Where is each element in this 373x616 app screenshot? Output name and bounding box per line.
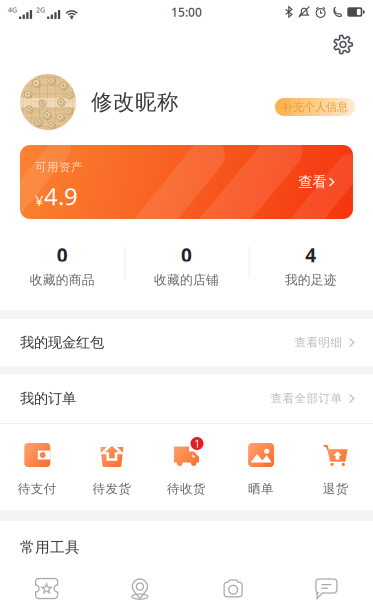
button[interactable]: 4 bbox=[249, 223, 373, 310]
staticText: 待收货 bbox=[167, 481, 206, 497]
staticText: 我的足迹 bbox=[285, 272, 337, 288]
staticText: 收藏的店铺 bbox=[154, 272, 219, 288]
staticText: 15:00 bbox=[171, 4, 202, 20]
staticText: 4.9 bbox=[44, 179, 78, 212]
button[interactable]: 退货 bbox=[298, 424, 373, 510]
staticText: 收藏的商品 bbox=[30, 272, 95, 288]
button[interactable]: 可用资产 bbox=[20, 145, 353, 219]
button[interactable]: 待支付 bbox=[0, 424, 75, 510]
staticText: 0 bbox=[181, 242, 192, 268]
button[interactable]: 修改昵称 bbox=[76, 88, 179, 116]
button[interactable]: 我的订单 bbox=[0, 374, 373, 423]
staticText: 退货 bbox=[323, 481, 349, 497]
button[interactable]: 我的现金红包 bbox=[0, 319, 373, 366]
staticText: 补充个人信息 bbox=[282, 100, 348, 114]
button[interactable]: 我的评价 bbox=[280, 573, 373, 603]
staticText: 1 bbox=[194, 436, 200, 451]
staticText: 4 bbox=[305, 242, 316, 268]
staticText: 待支付 bbox=[18, 481, 57, 497]
button[interactable]: 晒单 bbox=[224, 424, 298, 510]
staticText: 待发货 bbox=[92, 481, 131, 497]
staticText: 我的现金红包 bbox=[20, 334, 104, 351]
button[interactable]: 头像 bbox=[20, 74, 76, 130]
button[interactable]: 0 bbox=[124, 223, 249, 310]
staticText: 查看明细 bbox=[294, 335, 342, 350]
button[interactable]: 补充个人信息 bbox=[275, 93, 355, 111]
staticText: 修改昵称 bbox=[91, 88, 179, 116]
staticText: 4G bbox=[8, 5, 17, 14]
button[interactable]: 设置 bbox=[327, 28, 359, 60]
staticText: 常用工具 bbox=[20, 538, 80, 556]
button[interactable]: 待发货 bbox=[75, 424, 149, 510]
staticText: 查看全部订单 bbox=[270, 391, 342, 406]
staticText: ¥ bbox=[35, 190, 44, 210]
button[interactable]: 1 bbox=[149, 424, 224, 510]
staticText: 0 bbox=[57, 242, 68, 268]
button[interactable]: 我的地址 bbox=[93, 573, 186, 603]
staticText: 可用资产 bbox=[35, 160, 83, 174]
button[interactable]: 0 bbox=[0, 223, 124, 310]
staticText: 查看 bbox=[298, 173, 326, 191]
staticText: 我的订单 bbox=[20, 390, 76, 407]
button[interactable]: 优惠券 bbox=[0, 573, 93, 603]
staticText: 2G bbox=[36, 5, 45, 14]
button[interactable]: 扫一扫 bbox=[186, 573, 280, 603]
staticText: 晒单 bbox=[248, 481, 274, 497]
